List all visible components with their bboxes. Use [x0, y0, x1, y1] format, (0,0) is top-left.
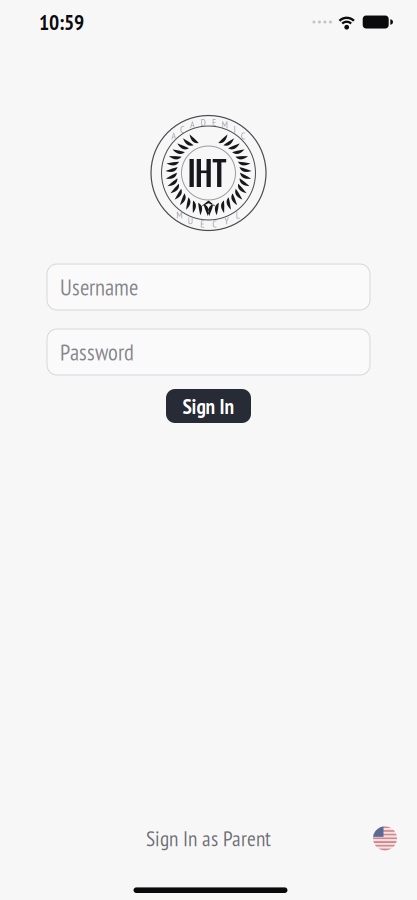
staticText: C [180, 123, 185, 136]
staticText: A [171, 129, 176, 142]
button[interactable]: Language [373, 826, 397, 850]
staticText: 10:59 [39, 8, 84, 36]
staticText: I [233, 123, 235, 136]
staticText: C [212, 217, 217, 230]
staticText: Username [60, 272, 138, 302]
staticText: Password [60, 337, 134, 367]
staticText: E [200, 217, 204, 230]
staticText: Sign In as Parent [146, 825, 271, 852]
staticText: Sign In [182, 392, 234, 420]
button[interactable]: Sign In [166, 389, 251, 423]
staticText: M [222, 118, 228, 131]
staticText: A [190, 118, 195, 131]
staticText: Y [224, 214, 229, 227]
staticText: D [200, 116, 205, 129]
staticText: L [236, 208, 240, 221]
staticText: M [176, 208, 182, 221]
staticText: C [241, 129, 246, 142]
staticText: U [188, 214, 193, 227]
button[interactable]: Sign In as Parent [138, 821, 279, 856]
staticText: E [212, 116, 216, 129]
